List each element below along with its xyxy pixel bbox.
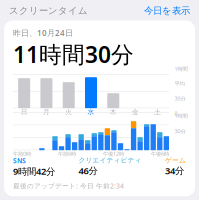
staticText: 昨日、10月24日 — [13, 27, 73, 38]
staticText: 木 — [110, 108, 117, 116]
staticText: 土 — [154, 108, 161, 116]
staticText: SNS — [13, 156, 26, 165]
staticText: 月 — [43, 108, 50, 116]
staticText: 1時間 — [174, 65, 187, 72]
staticText: 46分 — [78, 164, 97, 177]
staticText: 午前6時 — [58, 150, 76, 157]
staticText: スクリーンタイム — [9, 5, 88, 16]
staticText: 火 — [65, 108, 72, 116]
button[interactable]: 昨日、10月24日 — [4, 20, 195, 196]
staticText: 34分 — [165, 164, 184, 177]
staticText: 11時間30分 — [13, 39, 134, 69]
staticText: 金 — [132, 108, 139, 116]
staticText: 水 — [87, 108, 94, 116]
staticText: 1時間 — [174, 112, 187, 119]
staticText: クリエイティビティ — [78, 156, 141, 164]
staticText: 午前0時 — [13, 150, 31, 157]
staticText: 30分 — [174, 95, 185, 102]
staticText: 午後6時 — [151, 150, 169, 157]
staticText: 今日を表示 — [144, 5, 190, 16]
staticText: 30分 — [174, 128, 185, 135]
button[interactable]: 今日を表示 — [144, 5, 190, 16]
staticText: 最後のアップデート: 今日 午前2:34 — [13, 181, 124, 190]
staticText: 9時間42分 — [13, 165, 55, 177]
staticText: 平均 — [174, 80, 184, 87]
staticText: ゲーム — [165, 156, 186, 164]
staticText: 0 — [174, 110, 177, 117]
staticText: 日 — [21, 108, 28, 116]
staticText: 午後12時 — [103, 150, 124, 157]
